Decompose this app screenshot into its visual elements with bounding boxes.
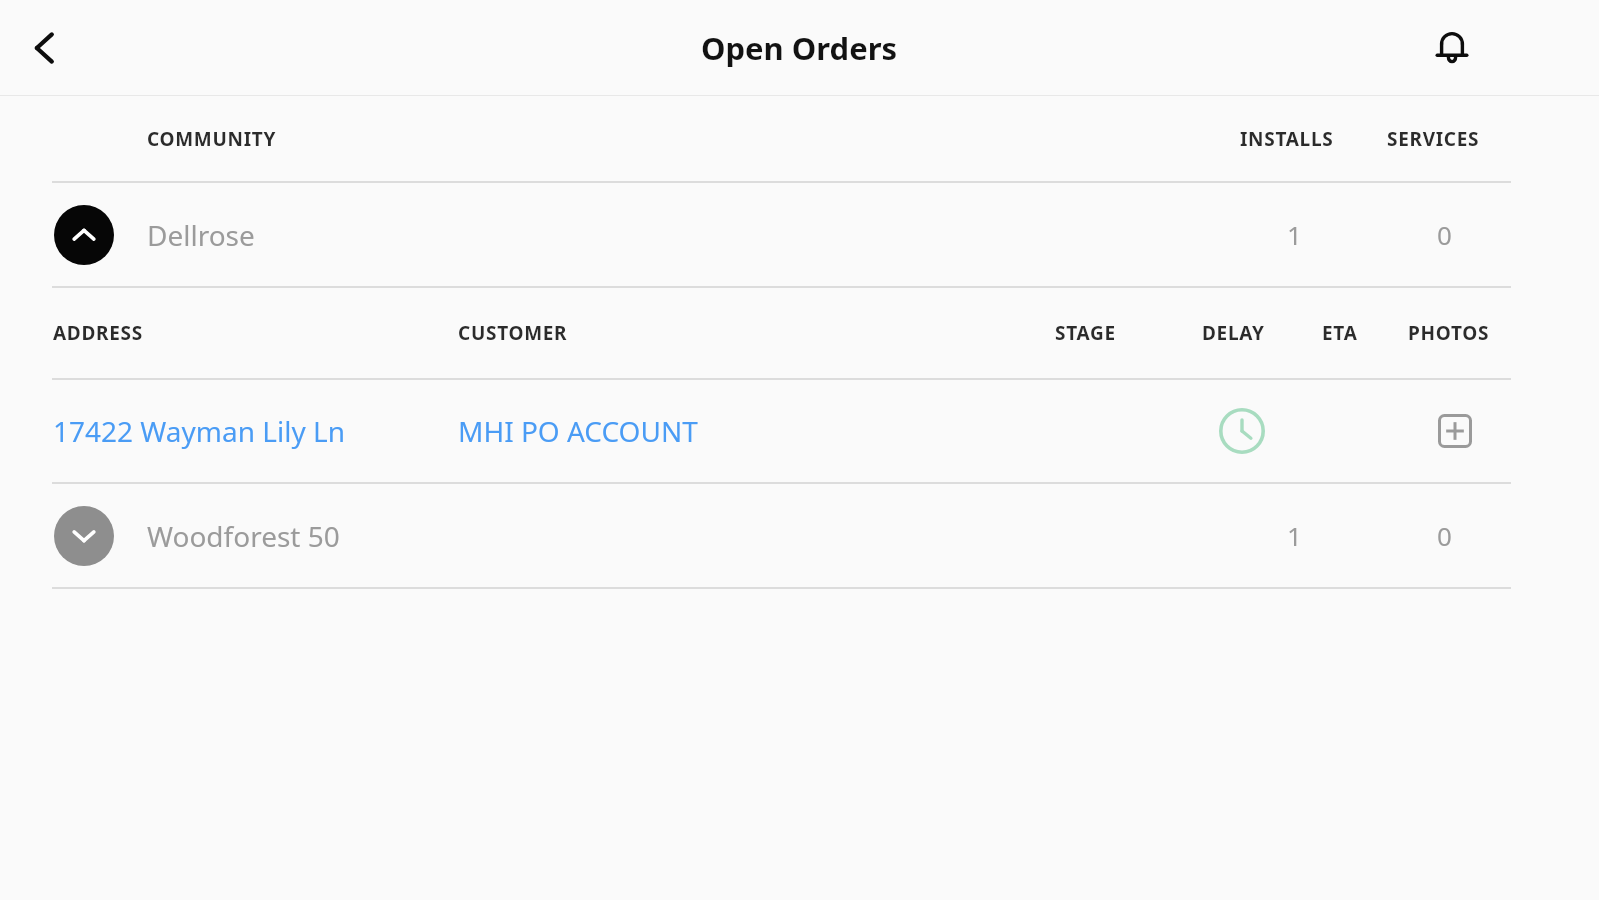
staticText: Dellrose [147,216,255,254]
staticText: 1 [1287,217,1302,252]
staticText: Woodforest 50 [147,517,340,555]
staticText: SERVICES [1387,126,1480,152]
button[interactable]: Collapse Dellrose [0,183,1599,286]
staticText: DELAY [1202,320,1265,346]
button[interactable]: 17422 Wayman Lily Ln [0,380,1599,482]
staticText: PHOTOS [1408,320,1490,346]
staticText: CUSTOMER [458,320,568,346]
staticText: Open Orders [701,27,898,69]
button[interactable]: Back [14,17,76,79]
button[interactable]: Expand Woodforest 50 [0,484,1599,587]
staticText: ETA [1322,320,1358,346]
button[interactable]: Expand Woodforest 50 [54,506,114,566]
button[interactable]: Collapse Dellrose [54,205,114,265]
button[interactable]: MHI PO ACCOUNT [458,412,698,450]
staticText: 0 [1437,518,1452,553]
staticText: ADDRESS [53,320,143,346]
button[interactable]: Notifications [1421,17,1483,79]
button[interactable]: Add photos [1423,399,1487,463]
staticText: 0 [1437,217,1452,252]
button[interactable]: Delay status [1210,399,1274,463]
staticText: 1 [1287,518,1302,553]
button[interactable]: 17422 Wayman Lily Ln [53,412,345,450]
staticText: STAGE [1055,320,1116,346]
staticText: INSTALLS [1240,126,1334,152]
staticText: COMMUNITY [147,126,277,152]
